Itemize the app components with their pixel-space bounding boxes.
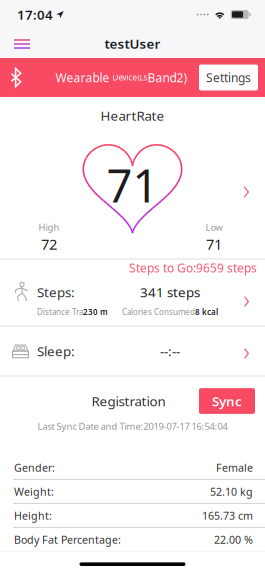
staticText: Distance Tra <box>37 307 83 317</box>
staticText: 165.73 cm <box>202 509 253 523</box>
staticText: Registration <box>91 392 165 410</box>
staticText: Calories Consumed <box>122 307 195 317</box>
staticText: 17:04 <box>17 6 53 23</box>
staticText: Low <box>205 221 222 233</box>
staticText: 341 steps <box>140 283 200 301</box>
staticText: 52.10 kg <box>210 485 253 499</box>
staticText: Female <box>216 461 253 475</box>
staticText: Wearable <box>55 69 112 85</box>
staticText: Device(Ls <box>112 72 147 83</box>
button[interactable]: Menu <box>0 31 44 57</box>
button[interactable]: Settings <box>199 64 258 90</box>
button[interactable]: Sleep: <box>0 327 265 375</box>
button[interactable]: Sync <box>199 388 255 414</box>
staticText: --:-- <box>160 342 180 360</box>
staticText: 230 m <box>83 307 108 317</box>
button[interactable]: Heart rate details <box>243 186 249 198</box>
staticText: Settings <box>206 69 251 85</box>
staticText: 22.00 % <box>214 533 253 547</box>
staticText: 71 <box>206 234 222 254</box>
staticText: High <box>38 221 59 233</box>
staticText: Sync <box>212 392 242 410</box>
staticText: 72 <box>41 234 57 254</box>
staticText: testUser <box>104 35 160 52</box>
button[interactable]: Steps to Go:9659 steps <box>0 260 265 325</box>
staticText: Height: <box>14 509 52 523</box>
staticText: Weight: <box>14 485 54 499</box>
staticText: Steps: <box>37 283 75 301</box>
staticText: Gender: <box>14 461 55 475</box>
staticText: 8 kcal <box>195 307 218 317</box>
staticText: Steps to Go:9659 steps <box>129 260 257 276</box>
staticText: Sleep: <box>37 342 75 360</box>
staticText: 71 <box>106 155 158 215</box>
staticText: Last Sync Date and Time:2019-07-17 16:54… <box>37 420 227 432</box>
staticText: Body Fat Percentage: <box>14 533 121 547</box>
staticText: HeartRate <box>100 107 164 124</box>
staticText: Band2) <box>147 69 187 85</box>
